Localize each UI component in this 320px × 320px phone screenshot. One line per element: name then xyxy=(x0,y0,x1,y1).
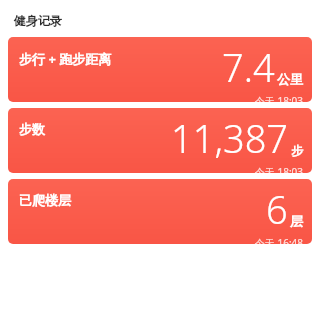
staticText: 今天 16:48 xyxy=(254,236,303,244)
staticText: 11,387 xyxy=(171,112,289,164)
staticText: 步行 + 跑步距离 xyxy=(19,50,112,68)
staticText: 公里 xyxy=(277,71,303,87)
staticText: 6 xyxy=(266,183,288,235)
staticText: 7.4 xyxy=(222,41,275,93)
staticText: 步数 xyxy=(19,121,45,137)
staticText: 步 xyxy=(291,143,303,158)
button[interactable]: 步行 + 跑步距离 xyxy=(8,37,312,102)
button[interactable]: 已爬楼层 xyxy=(8,179,312,244)
staticText: 健身记录 xyxy=(14,13,62,28)
staticText: 今天 18:03 xyxy=(254,94,303,102)
staticText: 今天 18:03 xyxy=(254,165,303,173)
button[interactable]: 步数 xyxy=(8,108,312,173)
staticText: 层 xyxy=(290,213,303,229)
staticText: 已爬楼层 xyxy=(19,192,71,208)
